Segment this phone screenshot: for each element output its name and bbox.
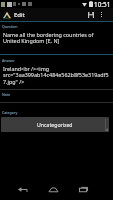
button[interactable]: Uncategorized <box>1 117 109 132</box>
staticText: Question <box>2 24 18 29</box>
button[interactable]: More options <box>96 8 107 21</box>
staticText: Ireland<br /><img src="3aa399ab14c484e56… <box>3 65 111 86</box>
button[interactable]: Back <box>9 179 35 199</box>
staticText: Name all the bordering countries of Unit… <box>3 31 109 44</box>
button[interactable]: Home <box>40 179 66 199</box>
button[interactable]: Save <box>85 8 96 21</box>
staticText: Category <box>2 110 18 115</box>
staticText: Note <box>2 92 11 97</box>
staticText: Uncategorized <box>37 121 73 128</box>
button[interactable]: Recent apps <box>70 179 96 199</box>
staticText: Answer <box>2 58 15 63</box>
staticText: Edit <box>14 11 25 19</box>
staticText: 10:51 <box>94 0 111 8</box>
